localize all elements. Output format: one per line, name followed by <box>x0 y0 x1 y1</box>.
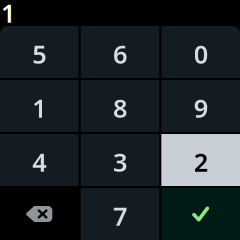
button[interactable]: 0 <box>161 26 240 78</box>
button[interactable]: 9 <box>161 80 240 132</box>
staticText: 0 <box>194 37 208 71</box>
staticText: 1 <box>1 0 15 30</box>
staticText: 7 <box>113 199 127 233</box>
staticText: 5 <box>32 37 46 71</box>
staticText: 2 <box>194 145 208 179</box>
button[interactable]: 2 <box>161 134 240 186</box>
button[interactable]: Confirm <box>161 188 240 240</box>
staticText: 4 <box>32 145 46 179</box>
button[interactable]: 1 <box>0 80 79 132</box>
button[interactable]: 3 <box>81 134 159 186</box>
staticText: 8 <box>113 91 127 125</box>
staticText: 1 <box>32 91 46 125</box>
button[interactable]: 7 <box>81 188 159 240</box>
button[interactable]: 4 <box>0 134 79 186</box>
button[interactable]: Delete <box>0 188 79 240</box>
button[interactable]: 8 <box>81 80 159 132</box>
staticText: 3 <box>113 145 127 179</box>
staticText: 9 <box>194 91 208 125</box>
staticText: 6 <box>113 37 127 71</box>
button[interactable]: 5 <box>0 26 79 78</box>
button[interactable]: 6 <box>81 26 159 78</box>
